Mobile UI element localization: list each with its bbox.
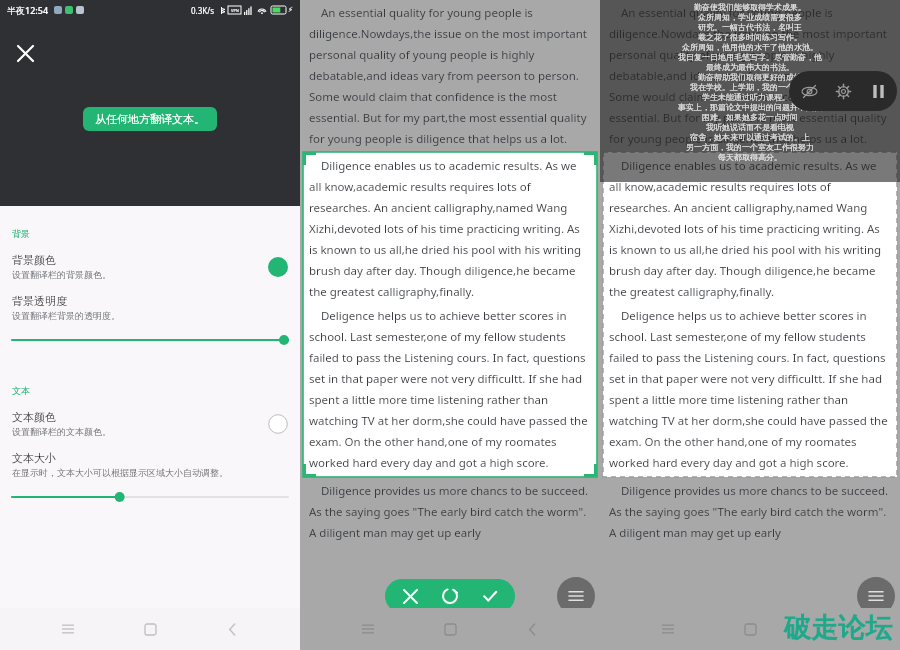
- staticText: 我日复一日地用毛笔写字。尽管勤奋，他: [678, 52, 822, 62]
- staticText: Deligence helps us to achieve better sco…: [309, 308, 591, 471]
- staticText: 众所周知，学业成绩需要很多: [698, 12, 802, 22]
- staticText: 从任何地方翻译文本。: [95, 112, 205, 126]
- staticText: 0.3K/s: [191, 5, 215, 16]
- button[interactable]: Cancel: [395, 581, 425, 611]
- staticText: 勤奋使我们能够取得学术成果。: [694, 2, 806, 12]
- staticText: VPN: [231, 8, 239, 13]
- button[interactable]: Menu: [55, 616, 81, 642]
- button[interactable]: Menu options: [557, 577, 595, 615]
- button[interactable]: Menu: [655, 616, 681, 642]
- staticText: Diligence provides us more chancs to be …: [609, 483, 891, 541]
- button[interactable]: Back: [219, 616, 245, 642]
- staticText: ⚡: [288, 6, 293, 14]
- staticText: 羲之花了很多时间练习写作。: [698, 32, 802, 42]
- staticText: 另一方面，我的一个室友工作很努力: [686, 142, 814, 152]
- staticText: 半夜12:54: [7, 4, 49, 16]
- button[interactable]: Menu options: [857, 577, 895, 615]
- staticText: 文本大小: [12, 451, 56, 465]
- staticText: 众所周知，他用他的水干了他的水池。: [682, 42, 818, 52]
- staticText: 我听她说话而不是看电视: [706, 122, 794, 132]
- button[interactable]: Refresh: [435, 581, 465, 611]
- button[interactable]: Home: [437, 616, 463, 642]
- staticText: Diligence enables us to academic results…: [609, 158, 891, 300]
- button[interactable]: 背景颜色: [12, 253, 288, 280]
- staticText: 每天都取得高分。: [718, 152, 782, 162]
- button[interactable]: Home: [737, 616, 763, 642]
- staticText: 在显示时，文本大小可以根据显示区域大小自动调整。: [12, 467, 228, 478]
- button[interactable]: Back: [819, 616, 845, 642]
- staticText: 最终成为最伟大的书法。: [706, 62, 794, 72]
- button[interactable]: 文本颜色: [12, 410, 288, 437]
- staticText: 文本颜色: [12, 410, 56, 424]
- button[interactable]: Hide translation: [794, 76, 824, 106]
- staticText: Deligence helps us to achieve better sco…: [609, 308, 891, 471]
- staticText: 事实上，那篇论文中提出的问题并不是很: [678, 102, 822, 112]
- staticText: 背景颜色: [12, 253, 56, 267]
- staticText: 文本: [12, 385, 30, 396]
- button[interactable]: Menu: [355, 616, 381, 642]
- staticText: An essential quality for young people is…: [309, 5, 591, 147]
- button[interactable]: Home: [137, 616, 163, 642]
- button[interactable]: Settings: [828, 76, 858, 106]
- staticText: 破走论坛: [784, 611, 892, 645]
- staticText: 困难。如果她多花一点时间: [702, 112, 798, 122]
- button[interactable]: Back: [519, 616, 545, 642]
- button[interactable]: 背景透明度: [12, 294, 288, 321]
- staticText: Diligence enables us to academic results…: [309, 158, 591, 300]
- staticText: 背景透明度: [12, 294, 67, 308]
- button[interactable]: Pause: [863, 76, 893, 106]
- staticText: 我在学校。上学期，我的一个同学: [690, 82, 810, 92]
- staticText: Diligence provides us more chancs to be …: [309, 483, 591, 541]
- button[interactable]: 从任何地方翻译文本。: [83, 107, 217, 131]
- staticText: 研究。一幅古代书法，名叫王: [698, 22, 802, 32]
- button[interactable]: 文本大小: [12, 451, 288, 478]
- staticText: An essential quality for young people is…: [609, 5, 891, 147]
- button[interactable]: Close: [10, 38, 40, 68]
- button[interactable]: [12, 490, 288, 504]
- button[interactable]: [12, 333, 288, 347]
- staticText: 设置翻译栏背景的透明度。: [12, 310, 120, 321]
- staticText: 设置翻译栏的背景颜色。: [12, 269, 111, 280]
- staticText: 背景: [12, 228, 30, 239]
- staticText: 学生未能通过听力课程。在: [702, 92, 798, 102]
- staticText: 宿舍，她本来可以通过考试的。上: [690, 132, 810, 142]
- button[interactable]: Confirm: [475, 581, 505, 611]
- staticText: 设置翻译栏的文本颜色。: [12, 426, 111, 437]
- staticText: 勤奋帮助我们取得更好的成绩: [698, 72, 802, 82]
